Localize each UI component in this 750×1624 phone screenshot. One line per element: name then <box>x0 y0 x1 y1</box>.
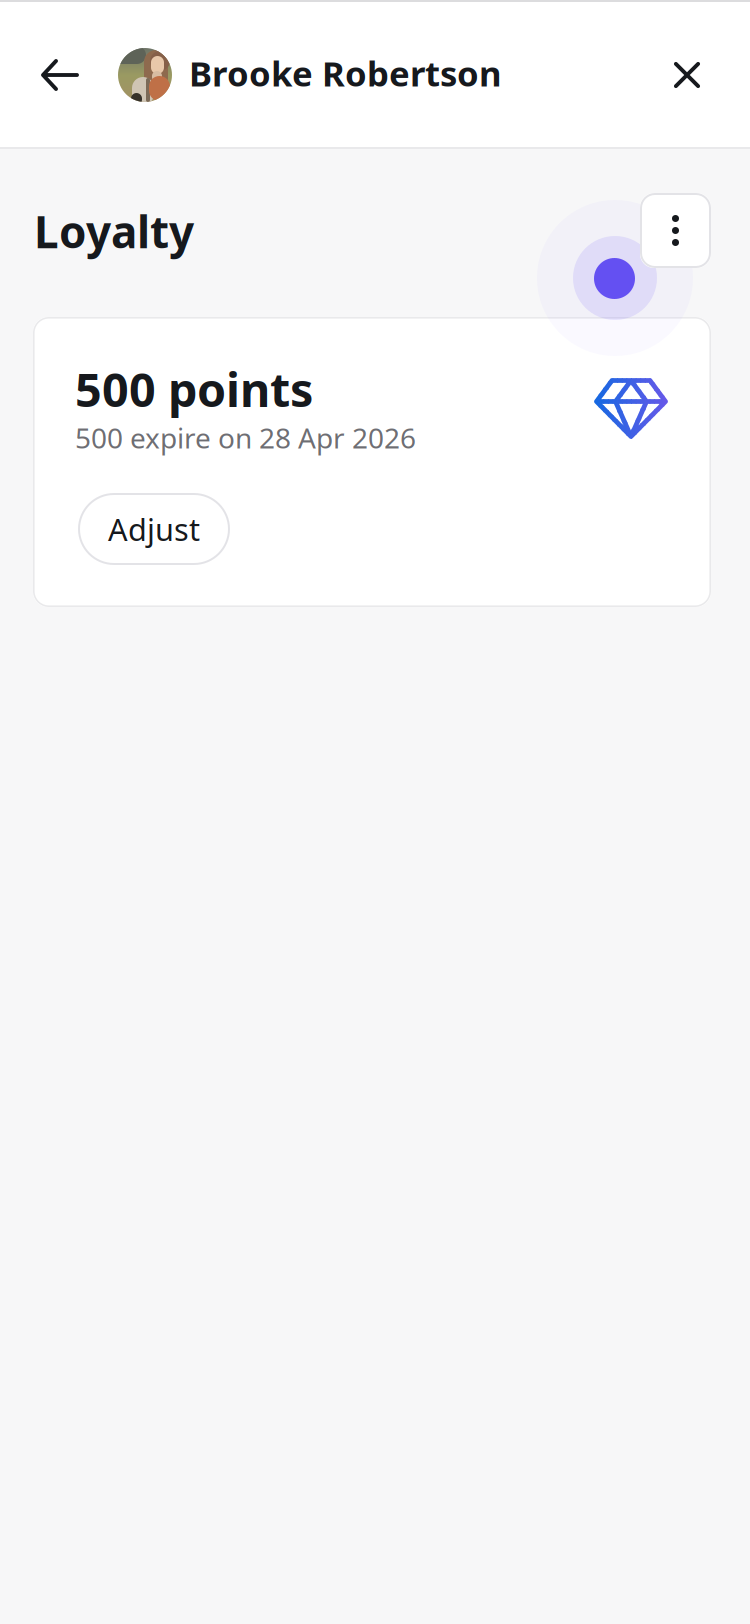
staticText: 500 points <box>75 358 313 420</box>
staticText: 500 expire on 28 Apr 2026 <box>75 419 416 456</box>
button[interactable]: Close <box>659 47 715 103</box>
staticText: Brooke Robertson <box>189 50 502 96</box>
button[interactable]: Back <box>30 45 90 105</box>
button[interactable]: More options <box>640 193 711 268</box>
staticText: Adjust <box>108 509 200 549</box>
button[interactable]: Adjust <box>78 493 230 565</box>
staticText: Loyalty <box>34 202 194 260</box>
